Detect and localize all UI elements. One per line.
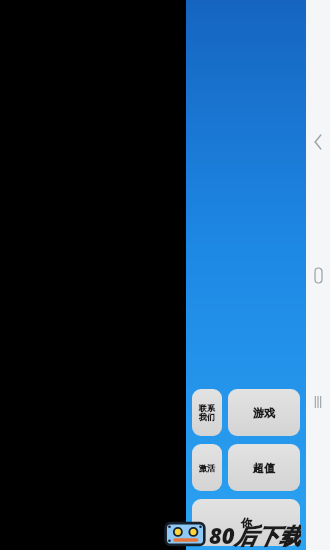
button[interactable]: 联系 我们 <box>192 389 222 436</box>
button[interactable]: 超值 <box>228 444 300 491</box>
button[interactable]: 游戏 <box>228 389 300 436</box>
button[interactable]: 激活 <box>192 444 222 491</box>
staticText: 你 <box>241 516 252 530</box>
button[interactable]: Recent apps <box>306 385 330 419</box>
button[interactable]: Back <box>306 125 330 159</box>
staticText: 超值 <box>253 461 275 475</box>
staticText: 联系 我们 <box>199 403 215 422</box>
button[interactable]: 你 <box>192 499 300 546</box>
staticText: 80后下载 <box>209 520 301 548</box>
button[interactable]: Home <box>306 258 330 292</box>
staticText: 游戏 <box>253 406 275 420</box>
staticText: 激活 <box>199 463 215 473</box>
